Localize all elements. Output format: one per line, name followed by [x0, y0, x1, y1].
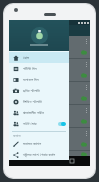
button[interactable]: More options — [86, 85, 87, 90]
button[interactable]: Home — [46, 157, 54, 165]
button[interactable]: নাইট মোড — [9, 118, 69, 129]
button[interactable]: More options — [86, 131, 87, 136]
button[interactable]: হোম — [9, 52, 69, 63]
staticText: ছবির গ্যালারি — [23, 88, 40, 94]
button[interactable]: More options — [9, 151, 90, 156]
button[interactable]: ফলাফল দিন — [9, 74, 69, 85]
button[interactable]: More options — [9, 59, 90, 81]
button[interactable]: More options — [9, 36, 90, 58]
button[interactable]: Back — [23, 157, 31, 165]
staticText: নাইট মোড — [23, 121, 37, 127]
button[interactable]: বন্ধুদের সাথে শেয়ার করুন — [9, 149, 69, 160]
button[interactable]: More options — [86, 108, 87, 113]
button[interactable]: মতামত জানান — [9, 138, 69, 149]
button[interactable]: ছবির গ্যালারি — [9, 85, 69, 96]
button[interactable]: ভিডিও গ্যালারি — [9, 96, 69, 107]
staticText: প্রয়োজনীয় নাম্বার — [23, 110, 44, 116]
staticText: ভিডিও গ্যালারি — [23, 99, 42, 105]
button[interactable]: Recent apps — [68, 157, 76, 165]
button[interactable]: More options — [86, 154, 87, 156]
button[interactable]: More options — [9, 128, 90, 150]
button[interactable] — [9, 20, 69, 51]
staticText: পরীক্ষা দিন — [23, 66, 37, 72]
button[interactable]: More options — [9, 105, 90, 127]
button[interactable]: More options — [86, 62, 87, 67]
button[interactable]: প্রয়োজনীয় নাম্বার — [9, 107, 69, 118]
staticText: অন্যান্য — [13, 134, 21, 137]
button[interactable]: More options — [9, 82, 90, 104]
staticText: হোম — [23, 56, 29, 60]
button[interactable]: More options — [86, 39, 87, 44]
staticText: ফলাফল দিন — [23, 77, 39, 83]
staticText: মতামত জানান — [23, 141, 42, 147]
button[interactable]: পরীক্ষা দিন — [9, 63, 69, 74]
staticText: বন্ধুদের সাথে শেয়ার করুন — [23, 152, 56, 158]
